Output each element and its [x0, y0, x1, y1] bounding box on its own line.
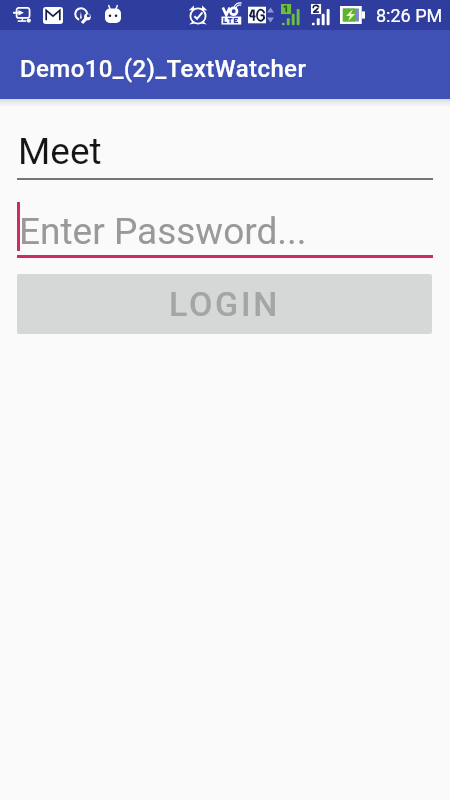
button[interactable]: Meet — [17, 122, 433, 180]
other: SIM 2 signal strength — [311, 4, 332, 27]
other: Gmail notification — [43, 7, 63, 24]
other: Data transfer — [267, 6, 274, 24]
staticText: Demo10_(2)_TextWatcher — [20, 55, 307, 83]
other: Battery charging — [340, 6, 365, 24]
other: SIM 1 signal strength — [281, 4, 302, 27]
staticText: Enter Password... — [19, 210, 307, 253]
staticText: Meet — [18, 130, 102, 173]
button[interactable]: Enter Password... — [17, 199, 433, 258]
other: Developer options — [74, 7, 90, 23]
other: Screen cast — [13, 7, 31, 23]
other: VoLTE — [221, 5, 244, 26]
staticText: 8:26 PM — [376, 5, 443, 26]
other: Alarm set — [188, 5, 208, 25]
staticText: LOGIN — [169, 284, 281, 324]
other: Android system — [105, 5, 121, 23]
other: 4G network — [248, 6, 266, 24]
button[interactable]: LOGIN — [17, 274, 432, 334]
